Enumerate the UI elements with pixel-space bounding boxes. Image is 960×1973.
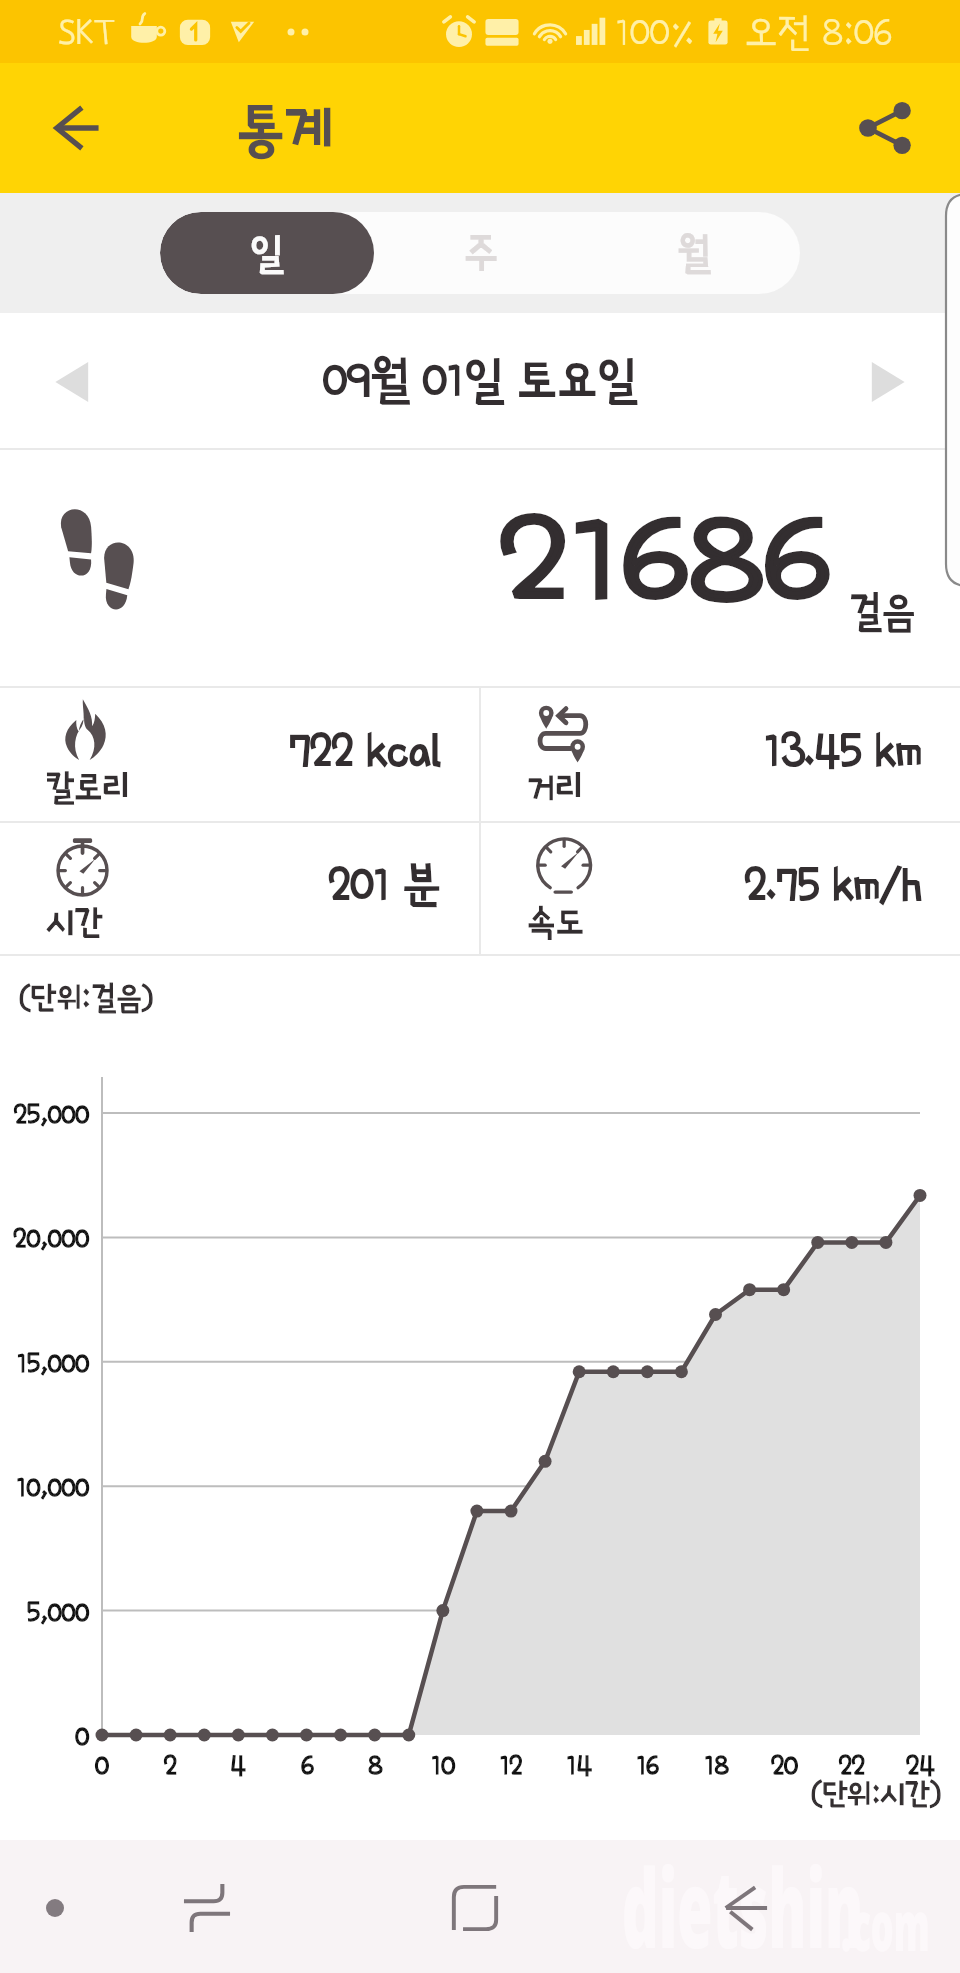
staticText: 8 <box>368 1751 383 1780</box>
staticText: 722 kcal <box>289 727 441 775</box>
staticText: 13.45 km <box>764 727 922 775</box>
button[interactable]: 속도 <box>481 823 960 954</box>
staticText: dietshin <box>622 1832 863 1973</box>
staticText: 오전 8:06 <box>744 11 892 53</box>
staticText: 5,000 <box>26 1598 89 1627</box>
staticText: 15,000 <box>16 1349 89 1378</box>
button[interactable]: 거리 <box>481 688 960 821</box>
button[interactable]: Back <box>29 81 123 175</box>
button[interactable]: Back <box>695 1858 795 1958</box>
staticText: 속도 <box>527 905 584 940</box>
button[interactable]: 칼로리 <box>0 688 479 821</box>
staticText: 일 <box>250 232 284 274</box>
staticText: 14 <box>566 1751 592 1780</box>
staticText: 6 <box>301 1751 314 1780</box>
button[interactable]: Share <box>840 81 934 175</box>
staticText: 5,000 <box>26 1598 89 1627</box>
staticText: 칼로리 <box>46 770 131 805</box>
staticText: 09월 01일 토요일 <box>323 355 638 405</box>
staticText: 10 <box>431 1751 455 1780</box>
staticText: 거리 <box>527 770 584 805</box>
staticText: 주 <box>464 232 498 274</box>
staticText: 22 <box>839 1751 865 1780</box>
staticText: (단위:시간) <box>811 1778 941 1809</box>
staticText: (단위:시간) <box>811 1778 941 1809</box>
staticText: 2 <box>164 1751 177 1780</box>
staticText: 주 <box>464 232 498 274</box>
staticText: 22 <box>839 1751 865 1780</box>
staticText: 12 <box>499 1751 523 1780</box>
staticText: 시간 <box>46 905 103 940</box>
staticText: SKT <box>58 12 116 52</box>
staticText: 21686 <box>500 496 830 623</box>
button[interactable]: Next day <box>850 345 924 419</box>
staticText: 201 분 <box>329 861 441 909</box>
staticText: 10,000 <box>16 1473 89 1502</box>
staticText: 13.45 km <box>764 727 922 775</box>
staticText: 722 kcal <box>289 727 441 775</box>
button[interactable]: Assistant <box>5 1858 105 1958</box>
staticText: (단위:걸음) <box>19 981 154 1013</box>
staticText: 16 <box>636 1751 659 1780</box>
staticText: 20 <box>771 1751 798 1780</box>
staticText: 24 <box>906 1751 935 1780</box>
staticText: 0 <box>75 1722 89 1751</box>
staticText: 속도 <box>527 905 584 940</box>
staticText: 통계 <box>236 100 333 160</box>
staticText: 20,000 <box>13 1224 89 1253</box>
button[interactable]: Recent apps <box>157 1858 257 1958</box>
staticText: 14 <box>566 1751 592 1780</box>
button[interactable]: 주 <box>374 212 587 294</box>
staticText: 100% <box>615 11 696 53</box>
staticText: 걸음 <box>848 590 916 632</box>
staticText: 18 <box>704 1751 729 1780</box>
staticText: 25,000 <box>13 1100 89 1129</box>
staticText: 0 <box>95 1751 109 1780</box>
staticText: 2 <box>164 1751 177 1780</box>
staticText: 통계 <box>236 100 333 160</box>
staticText: 10 <box>431 1751 455 1780</box>
staticText: 09월 01일 토요일 <box>323 355 638 405</box>
button[interactable]: 일 <box>160 212 374 294</box>
staticText: 12 <box>499 1751 523 1780</box>
staticText: 8 <box>368 1751 383 1780</box>
staticText: 걸음 <box>848 590 916 632</box>
staticText: 4 <box>230 1751 246 1780</box>
staticText: 201 분 <box>329 861 441 909</box>
staticText: 20 <box>771 1751 798 1780</box>
button[interactable]: 월 <box>587 212 800 294</box>
button[interactable]: Home <box>425 1858 525 1958</box>
staticText: 월 <box>677 232 711 274</box>
staticText: 거리 <box>527 770 584 805</box>
staticText: 일 <box>250 232 284 274</box>
staticText: 시간 <box>46 905 103 940</box>
staticText: 18 <box>704 1751 729 1780</box>
staticText: 6 <box>301 1751 314 1780</box>
staticText: 15,000 <box>16 1349 89 1378</box>
staticText: 월 <box>677 232 711 274</box>
staticText: 16 <box>636 1751 659 1780</box>
staticText: 0 <box>95 1751 109 1780</box>
button[interactable]: 시간 <box>0 823 479 954</box>
staticText: 4 <box>230 1751 246 1780</box>
staticText: 21686 <box>500 496 830 623</box>
staticText: (단위:걸음) <box>19 981 154 1013</box>
staticText: 10,000 <box>16 1473 89 1502</box>
staticText: 2.75 km/h <box>745 861 922 909</box>
staticText: 0 <box>75 1722 89 1751</box>
staticText: 20,000 <box>13 1224 89 1253</box>
button[interactable]: Previous day <box>36 345 110 419</box>
staticText: 24 <box>906 1751 935 1780</box>
staticText: 칼로리 <box>46 770 131 805</box>
staticText: 2.75 km/h <box>745 861 922 909</box>
staticText: 25,000 <box>13 1100 89 1129</box>
